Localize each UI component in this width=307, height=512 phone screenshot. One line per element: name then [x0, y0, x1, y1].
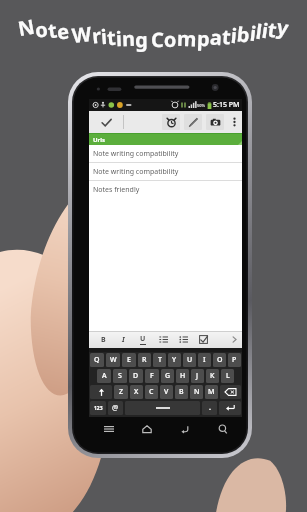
button[interactable]: Z — [114, 385, 128, 399]
staticText: Y — [172, 355, 177, 365]
button[interactable]: O — [213, 353, 226, 367]
staticText: 123 — [94, 405, 103, 412]
button[interactable]: Note writing compatibility — [89, 163, 242, 181]
staticText: o — [33, 15, 50, 44]
staticText: 50% — [197, 103, 206, 108]
button[interactable]: B — [175, 385, 188, 399]
staticText: C — [149, 387, 154, 397]
button[interactable]: H — [176, 369, 189, 383]
button[interactable]: U — [183, 353, 196, 367]
staticText: 5:15 PM — [213, 100, 240, 110]
button[interactable]: I — [198, 353, 211, 367]
staticText: L — [226, 371, 230, 381]
staticText: . — [209, 403, 211, 413]
staticText: C — [151, 26, 164, 53]
button[interactable]: G — [161, 369, 174, 383]
staticText: @ — [112, 403, 119, 413]
button[interactable]: Menu — [89, 417, 128, 441]
staticText: Urls — [93, 136, 106, 144]
button[interactable]: Backspace — [220, 385, 241, 399]
button[interactable]: More formatting — [226, 331, 242, 348]
button[interactable]: M — [205, 385, 218, 399]
staticText: B — [179, 387, 184, 397]
staticText: G — [165, 371, 171, 381]
button[interactable]: Italic — [113, 331, 133, 348]
staticText: P — [232, 355, 237, 365]
button[interactable]: Search — [204, 417, 242, 441]
button[interactable]: Alarm — [162, 114, 180, 130]
staticText: I — [203, 355, 206, 365]
button[interactable]: N — [190, 385, 203, 399]
staticText: i — [115, 25, 123, 52]
button[interactable]: Done — [89, 111, 123, 133]
staticText: t — [106, 24, 117, 51]
staticText: A — [102, 371, 107, 381]
button[interactable]: K — [206, 369, 219, 383]
button[interactable]: Period — [202, 401, 217, 415]
button[interactable]: Home — [128, 417, 166, 441]
button[interactable]: Numbered list — [153, 331, 173, 348]
staticText: W — [110, 355, 117, 365]
button[interactable]: More options — [226, 111, 242, 133]
button[interactable]: X — [130, 385, 143, 399]
staticText: U — [140, 334, 146, 344]
staticText: U — [187, 355, 193, 365]
staticText: O — [217, 355, 223, 365]
staticText: i — [230, 22, 238, 49]
staticText: t — [221, 23, 232, 50]
staticText: K — [210, 371, 215, 381]
staticText: H — [180, 371, 186, 381]
button[interactable]: P — [228, 353, 241, 367]
button[interactable]: Bold — [93, 331, 113, 348]
staticText: Q — [94, 355, 100, 365]
staticText: E — [127, 355, 131, 365]
button[interactable]: A — [97, 369, 111, 383]
button[interactable]: S — [113, 369, 127, 383]
staticText: g — [135, 26, 148, 53]
staticText: V — [164, 387, 169, 397]
button[interactable]: Y — [168, 353, 181, 367]
button[interactable]: L — [221, 369, 234, 383]
button[interactable]: Camera — [206, 114, 224, 130]
staticText: B — [101, 335, 106, 345]
button[interactable]: J — [191, 369, 204, 383]
staticText: R — [142, 355, 147, 365]
button[interactable]: Back — [166, 417, 204, 441]
button[interactable]: Bulleted list — [173, 331, 193, 348]
button[interactable]: V — [160, 385, 173, 399]
staticText: Note writing compatibility — [93, 149, 179, 159]
staticText: i — [260, 17, 270, 44]
button[interactable]: Notes friendly — [89, 181, 242, 198]
staticText: i — [248, 20, 258, 47]
button[interactable]: Shift — [90, 385, 112, 399]
staticText: m — [176, 25, 197, 52]
button[interactable]: D — [129, 369, 143, 383]
button[interactable]: Underline — [133, 331, 153, 348]
staticText: J — [196, 371, 199, 381]
staticText: D — [133, 371, 139, 381]
button[interactable]: Urls — [89, 134, 242, 145]
staticText: N — [194, 387, 200, 397]
staticText: Z — [119, 387, 124, 397]
button[interactable]: E — [122, 353, 136, 367]
button[interactable]: Checklist — [193, 331, 213, 348]
button[interactable]: Enter — [219, 401, 241, 415]
staticText: o — [164, 26, 177, 53]
button[interactable]: Space — [125, 401, 200, 415]
button[interactable]: Numbers — [90, 401, 106, 415]
staticText: Notes friendly — [93, 185, 140, 195]
button[interactable]: C — [145, 385, 158, 399]
staticText: X — [134, 387, 139, 397]
button[interactable]: R — [138, 353, 151, 367]
staticText: p — [196, 25, 211, 52]
button[interactable]: Edit — [184, 114, 202, 130]
staticText: t — [266, 15, 279, 44]
staticText: i — [100, 23, 108, 50]
staticText: e — [55, 17, 71, 46]
button[interactable]: Q — [90, 353, 104, 367]
button[interactable]: F — [145, 369, 159, 383]
button[interactable]: At sign — [108, 401, 123, 415]
button[interactable]: W — [106, 353, 120, 367]
button[interactable]: T — [153, 353, 166, 367]
button[interactable]: Note writing compatibility — [89, 145, 242, 163]
